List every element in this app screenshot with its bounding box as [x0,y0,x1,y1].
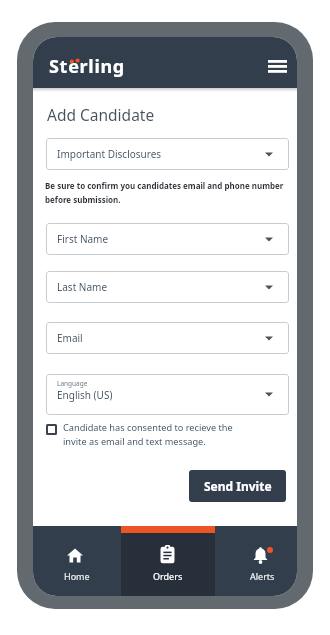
staticText: Email [57,331,83,345]
staticText: Add Candidate [47,104,155,125]
button[interactable]: Last Name [46,271,289,303]
button[interactable]: Email [46,322,289,354]
staticText: Candidate has consented to recieve the i… [63,421,233,447]
staticText: Important Disclosures [57,147,162,161]
staticText: Home [64,570,90,582]
staticText: Orders [153,570,183,582]
button[interactable]: Orders [121,533,215,589]
button[interactable]: Important Disclosures [46,138,289,170]
button[interactable]: Alerts [215,533,297,589]
button[interactable]: Candidate has consented to recieve the i… [46,421,289,447]
staticText: English (US) [57,388,113,402]
button[interactable] [264,53,290,77]
button[interactable]: Home [33,533,121,589]
staticText: Sterling [49,54,125,79]
staticText: First Name [57,232,109,246]
staticText: Alerts [250,570,275,582]
staticText: Be sure to confirm you candidates email … [45,180,284,205]
button[interactable]: First Name [46,223,289,255]
button[interactable]: Language [46,374,289,415]
staticText: Language [57,379,88,388]
staticText: Send Invite [204,478,272,494]
staticText: Last Name [57,280,108,294]
button[interactable]: Send Invite [189,470,286,502]
